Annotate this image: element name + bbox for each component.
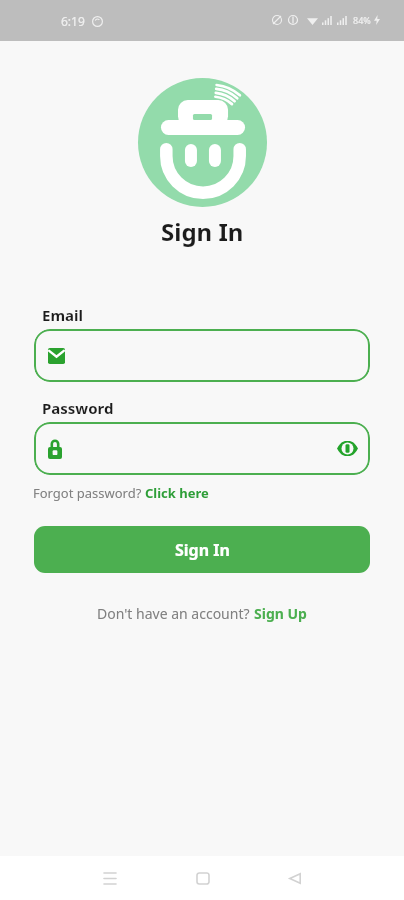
staticText: 84% xyxy=(353,14,371,26)
button[interactable]: Click here xyxy=(145,484,209,502)
other: Show password xyxy=(337,441,358,456)
staticText: Sign In xyxy=(161,215,244,248)
staticText: Email xyxy=(42,305,83,325)
button[interactable]: Show password xyxy=(34,422,370,475)
button[interactable]: Sign In xyxy=(34,526,370,573)
button[interactable]: Home xyxy=(178,859,228,897)
staticText: Forgot password? xyxy=(33,484,145,502)
staticText: Password xyxy=(42,398,114,418)
staticText: Click here xyxy=(145,484,209,502)
button[interactable] xyxy=(34,329,370,382)
staticText: Sign In xyxy=(175,539,230,561)
button[interactable]: Sign Up xyxy=(254,604,307,623)
button[interactable]: Recent apps xyxy=(85,859,135,897)
staticText: 6:19 xyxy=(61,13,85,29)
staticText: Sign Up xyxy=(254,604,307,623)
staticText: Don't have an account? xyxy=(97,604,254,623)
button[interactable]: Back xyxy=(270,859,320,897)
